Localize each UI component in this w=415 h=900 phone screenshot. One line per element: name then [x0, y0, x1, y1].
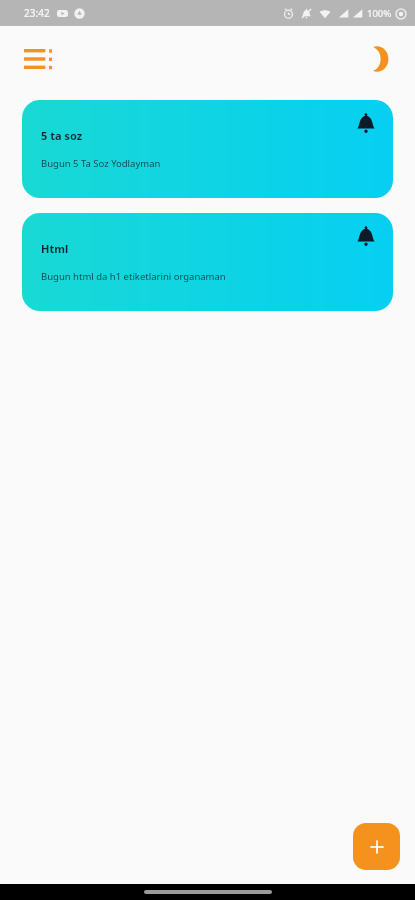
- button[interactable]: 5 ta soz: [22, 100, 393, 198]
- button[interactable]: Add note: [353, 823, 400, 870]
- button[interactable]: Toggle dark mode: [357, 39, 397, 79]
- button[interactable]: Html: [22, 213, 393, 311]
- staticText: Bugun 5 Ta Soz Yodlayman: [41, 157, 161, 170]
- button[interactable]: Reminder: [349, 106, 383, 140]
- staticText: 100%: [367, 7, 392, 20]
- staticText: Bugun html da h1 etiketlarini organaman: [41, 270, 226, 283]
- staticText: Html: [41, 241, 69, 256]
- button[interactable]: Reminder: [349, 219, 383, 253]
- staticText: 23:42: [24, 6, 50, 20]
- staticText: 5 ta soz: [41, 128, 83, 143]
- button[interactable]: Menu: [18, 39, 58, 79]
